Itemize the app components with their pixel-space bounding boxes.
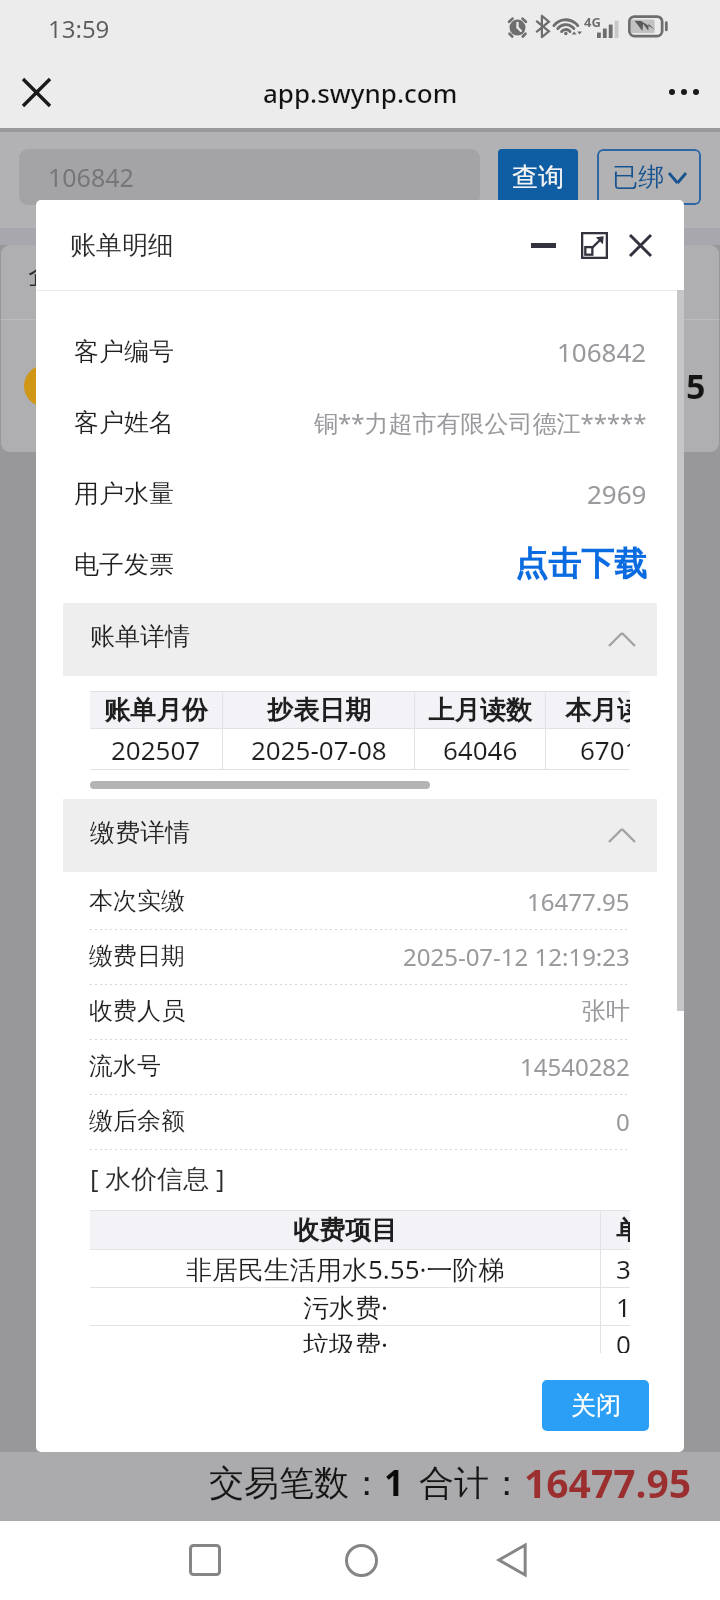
staticText: 0 [616, 1105, 630, 1138]
staticText: 查询 [512, 161, 564, 194]
staticText: 13:59 [48, 12, 110, 45]
staticText: 交易笔数： [209, 1461, 384, 1505]
button[interactable]: 流水号 [36, 1039, 684, 1093]
staticText: 客户姓名 [74, 407, 174, 438]
staticText: 16477.95 [527, 885, 630, 918]
staticText: 关闭 [571, 1390, 621, 1421]
button[interactable]: 客户编号 [36, 321, 684, 381]
staticText: 电子发票 [74, 549, 174, 580]
staticText: 张叶 [582, 996, 630, 1026]
staticText: 垃圾费· [303, 1326, 388, 1353]
staticText: 5 [686, 363, 706, 409]
staticText: 账单明细 [70, 229, 174, 262]
button[interactable]: 缴后余额 [36, 1094, 684, 1148]
staticText: 0.60 [616, 1326, 630, 1353]
button[interactable]: Minimize [523, 225, 563, 265]
staticText: 106842 [557, 334, 647, 369]
staticText: 收费项目 [293, 1214, 397, 1247]
button[interactable]: 用户水量 [36, 463, 684, 523]
staticText: 2025-07-12 12:19:23 [403, 940, 630, 973]
staticText: 14540282 [520, 1050, 630, 1083]
button[interactable]: 关闭 [542, 1380, 649, 1431]
button[interactable]: Close page [12, 68, 60, 116]
button[interactable]: Recent apps [173, 1528, 237, 1592]
staticText: 污水费· [303, 1289, 388, 1325]
staticText: 合计： [419, 1461, 524, 1505]
button[interactable]: 查询 [498, 149, 578, 205]
staticText: 客户编号 [74, 336, 174, 367]
staticText: 账单月份 [104, 694, 208, 727]
button[interactable]: Back [481, 1528, 545, 1592]
button[interactable]: Home [329, 1528, 393, 1592]
staticText: 本月读数 [565, 694, 630, 727]
staticText: 用户水量 [74, 478, 174, 509]
staticText: 缴费详情 [90, 817, 190, 848]
button[interactable]: 106842 [19, 149, 480, 205]
staticText: 2969 [587, 476, 647, 511]
staticText: 16477.95 [524, 1456, 692, 1509]
staticText: 抄表日期 [267, 694, 371, 727]
staticText: 上月读数 [428, 694, 532, 727]
button[interactable]: 已绑 [597, 149, 701, 205]
staticText: 1 [384, 1459, 405, 1507]
staticText: 缴后余额 [89, 1106, 185, 1136]
staticText: 单价 [616, 1214, 630, 1247]
staticText: 本次实缴 [89, 886, 185, 916]
staticText: 67015 [580, 732, 630, 767]
button[interactable]: More options [660, 68, 708, 116]
staticText: [ 水价信息 ] [90, 1160, 225, 1196]
staticText: 4G [584, 13, 601, 31]
button[interactable]: 缴费日期 [36, 929, 684, 983]
staticText: app.swynp.com [263, 75, 458, 110]
button[interactable]: 本次实缴 [36, 874, 684, 928]
button[interactable]: 客户姓名 [36, 392, 684, 452]
button[interactable]: 收费人员 [36, 984, 684, 1038]
staticText: 106842 [48, 160, 134, 194]
button[interactable]: Maximize [574, 225, 614, 265]
staticText: 1.10 [616, 1289, 630, 1324]
staticText: 缴费日期 [89, 941, 185, 971]
staticText: 企 [28, 257, 56, 292]
staticText: 已绑 [612, 161, 664, 194]
button[interactable]: 缴费详情 [63, 799, 657, 872]
staticText: 3.85 [616, 1251, 630, 1286]
staticText: 流水号 [89, 1051, 161, 1081]
button[interactable]: 电子发票 [36, 534, 684, 594]
staticText: 64046 [443, 732, 518, 767]
staticText: 点击下载 [515, 543, 647, 585]
staticText: 非居民生活用水5.55·一阶梯 [186, 1251, 505, 1287]
staticText: 账单详情 [90, 621, 190, 652]
staticText: 2025-07-08 [251, 732, 387, 767]
button[interactable]: 账单详情 [63, 603, 657, 676]
staticText: 铜**力超市有限公司德江***** [314, 406, 647, 439]
staticText: 202507 [111, 732, 201, 767]
staticText: 收费人员 [89, 996, 185, 1026]
button[interactable]: Close dialog [620, 225, 660, 265]
